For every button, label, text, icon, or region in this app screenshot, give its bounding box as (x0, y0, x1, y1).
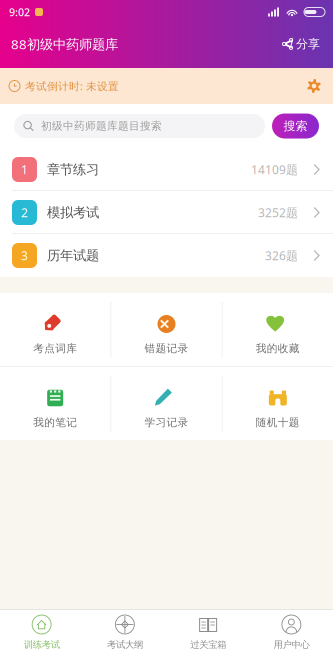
staticText: 3 (21, 247, 28, 263)
button[interactable]: 训练考试 (0, 610, 83, 659)
button[interactable]: 分享 (278, 32, 324, 56)
staticText: 9:02 (9, 5, 30, 19)
staticText: 我的收藏 (256, 342, 300, 355)
button[interactable]: 考点词库 (0, 293, 110, 366)
staticText: 326题 (265, 247, 298, 263)
button[interactable]: 用户中心 (250, 610, 333, 659)
staticText: 考试大纲 (107, 639, 143, 650)
button[interactable]: 设置 (304, 76, 324, 96)
staticText: 分享 (296, 37, 320, 51)
staticText: 模拟考试 (47, 204, 99, 221)
staticText: 考试倒计时: 未设置 (25, 79, 119, 93)
button[interactable]: 我的笔记 (0, 367, 110, 440)
staticText: 随机十题 (256, 416, 300, 429)
button[interactable]: 随机十题 (223, 367, 333, 440)
staticText: 用户中心 (273, 639, 309, 650)
staticText: 14109题 (251, 161, 298, 177)
button[interactable]: 学习记录 (111, 367, 222, 440)
staticText: 1 (21, 161, 28, 177)
staticText: 历年试题 (47, 247, 99, 264)
button[interactable]: 初级中药师题库题目搜索 (14, 114, 265, 138)
staticText: 过关宝箱 (190, 639, 226, 650)
button[interactable]: 考试大纲 (83, 610, 166, 659)
button[interactable]: 过关宝箱 (166, 610, 250, 659)
staticText: 搜索 (283, 119, 307, 133)
staticText: 我的笔记 (33, 416, 77, 429)
button[interactable]: 1 (0, 148, 333, 191)
staticText: 88初级中药师题库 (11, 35, 118, 53)
staticText: 学习记录 (144, 416, 188, 429)
staticText: 2 (21, 204, 28, 220)
button[interactable]: 3 (0, 234, 333, 277)
button[interactable]: 错题记录 (111, 293, 222, 366)
staticText: 考点词库 (33, 342, 77, 355)
button[interactable]: 我的收藏 (223, 293, 333, 366)
staticText: 训练考试 (24, 639, 60, 650)
staticText: 3252题 (258, 204, 298, 220)
staticText: 错题记录 (144, 342, 188, 355)
staticText: 章节练习 (47, 161, 99, 178)
staticText: 初级中药师题库题目搜索 (41, 119, 162, 132)
button[interactable]: 2 (0, 191, 333, 234)
button[interactable]: 搜索 (272, 113, 319, 138)
